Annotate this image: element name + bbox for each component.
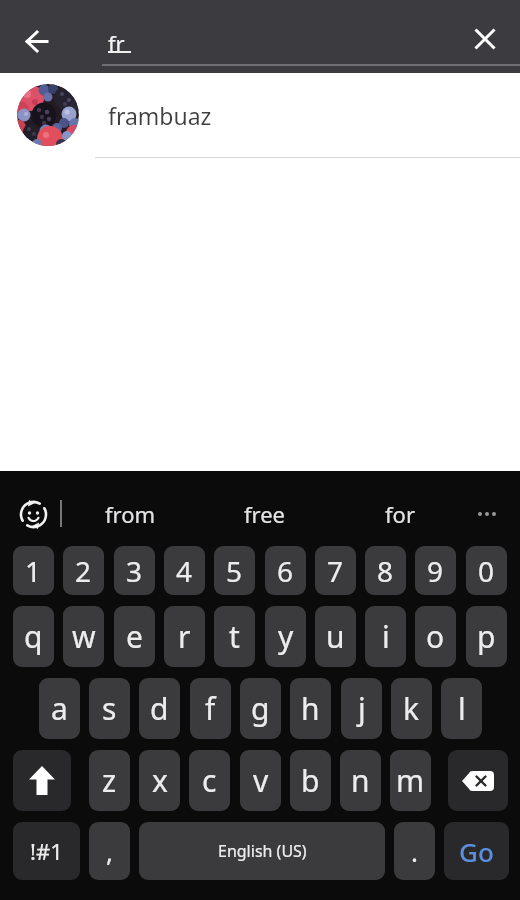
button[interactable]: z	[89, 750, 130, 811]
button[interactable]: 5	[214, 546, 255, 595]
button[interactable]: t	[214, 606, 255, 667]
staticText: z	[102, 760, 117, 801]
button[interactable]: o	[415, 606, 456, 667]
staticText: b	[301, 760, 320, 801]
staticText: h	[301, 688, 320, 729]
button[interactable]: m	[390, 750, 431, 811]
button[interactable]: a	[39, 678, 80, 739]
button[interactable]	[463, 17, 507, 61]
button[interactable]	[448, 750, 508, 811]
staticText: .	[411, 834, 418, 869]
button[interactable]: 6	[265, 546, 306, 595]
staticText: i	[382, 616, 390, 657]
button[interactable]: c	[189, 750, 230, 811]
staticText: !#1	[30, 836, 63, 866]
staticText: e	[126, 616, 143, 657]
button[interactable]: y	[265, 606, 306, 667]
button[interactable]	[14, 19, 58, 63]
button[interactable]: w	[63, 606, 104, 667]
staticText: v	[253, 760, 269, 801]
button[interactable]: d	[139, 678, 180, 739]
button[interactable]: n	[340, 750, 381, 811]
button[interactable]: k	[391, 678, 432, 739]
staticText: English (US)	[218, 840, 307, 862]
button[interactable]: f	[190, 678, 231, 739]
staticText: o	[426, 616, 445, 657]
staticText: t	[229, 616, 240, 657]
button[interactable]: free	[190, 489, 340, 539]
staticText: 3	[126, 552, 143, 590]
staticText: g	[251, 688, 270, 729]
button[interactable]	[462, 489, 512, 539]
button[interactable]	[13, 750, 71, 811]
button[interactable]: 8	[365, 546, 406, 595]
staticText: free	[244, 499, 286, 529]
staticText: w	[72, 616, 96, 657]
button[interactable]: from	[70, 489, 190, 539]
staticText: 1	[25, 552, 42, 590]
staticText: 2	[75, 552, 92, 590]
button[interactable]: 2	[63, 546, 104, 595]
staticText: u	[326, 616, 345, 657]
button[interactable]: v	[240, 750, 281, 811]
staticText: 6	[277, 552, 294, 590]
button[interactable]: !#1	[13, 822, 80, 880]
staticText: k	[403, 688, 420, 729]
button[interactable]: frambuaz	[0, 73, 520, 157]
button[interactable]: p	[466, 606, 507, 667]
staticText: frambuaz	[108, 100, 212, 131]
button[interactable]: 9	[415, 546, 456, 595]
staticText: Go	[459, 834, 494, 869]
staticText: q	[24, 616, 43, 657]
button[interactable]: 7	[315, 546, 356, 595]
staticText: ,	[106, 834, 113, 869]
button[interactable]: l	[441, 678, 482, 739]
staticText: 7	[327, 552, 344, 590]
button[interactable]: 0	[466, 546, 507, 595]
button[interactable]: j	[341, 678, 382, 739]
button[interactable]: for	[340, 489, 460, 539]
staticText: s	[102, 688, 117, 729]
staticText: fr	[108, 28, 125, 58]
staticText: 5	[226, 552, 243, 590]
button[interactable]: 3	[114, 546, 155, 595]
button[interactable]: h	[290, 678, 331, 739]
button[interactable]: ,	[89, 822, 130, 880]
button[interactable]: .	[394, 822, 435, 880]
button[interactable]: 4	[164, 546, 205, 595]
staticText: from	[105, 499, 156, 529]
staticText: l	[458, 688, 466, 729]
staticText: c	[202, 760, 217, 801]
button[interactable]: e	[114, 606, 155, 667]
staticText: 8	[377, 552, 394, 590]
staticText: a	[51, 688, 68, 729]
staticText: f	[205, 688, 216, 729]
staticText: x	[152, 760, 168, 801]
button[interactable]: 1	[13, 546, 54, 595]
staticText: for	[385, 499, 415, 529]
button[interactable]: b	[290, 750, 331, 811]
staticText: m	[396, 760, 425, 801]
button[interactable]	[10, 491, 56, 537]
staticText: 9	[427, 552, 444, 590]
button[interactable]: x	[139, 750, 180, 811]
button[interactable]: i	[365, 606, 406, 667]
staticText: r	[178, 616, 191, 657]
button[interactable]: u	[315, 606, 356, 667]
staticText: n	[351, 760, 370, 801]
button[interactable]: q	[13, 606, 54, 667]
button[interactable]: s	[89, 678, 130, 739]
staticText: 4	[176, 552, 193, 590]
button[interactable]: g	[240, 678, 281, 739]
staticText: y	[278, 616, 294, 657]
button[interactable]: Go	[444, 822, 509, 880]
staticText: j	[358, 688, 366, 729]
staticText: p	[477, 616, 496, 657]
staticText: d	[150, 688, 169, 729]
button[interactable]: English (US)	[139, 822, 385, 880]
staticText: 0	[478, 552, 495, 590]
button[interactable]: r	[164, 606, 205, 667]
